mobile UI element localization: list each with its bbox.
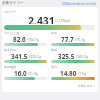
staticText: /305.2g xyxy=(76,54,88,58)
staticText: 炭水化物 xyxy=(4,48,16,52)
staticText: 詳細を見る › xyxy=(78,84,95,88)
button[interactable]: 詳細を見る › xyxy=(78,84,95,88)
staticText: たんぱく質 xyxy=(4,31,20,35)
staticText: /75.3g xyxy=(75,37,85,41)
staticText: 塩分 xyxy=(51,65,57,69)
staticText: 14.80 xyxy=(60,69,77,76)
staticText: 2024年4月8日(月)の記録 xyxy=(62,2,97,6)
staticText: 脂質 xyxy=(51,31,57,35)
staticText: 2,431 xyxy=(28,14,55,24)
staticText: 16.0 xyxy=(14,69,27,76)
button[interactable]: 2024年4月8日(月)の記録 xyxy=(62,2,97,6)
staticText: /21.9g xyxy=(28,71,38,75)
staticText: 栄養サマリー xyxy=(2,1,24,6)
staticText: /2,372kcal xyxy=(55,19,71,23)
staticText: 82.6 xyxy=(13,35,26,42)
staticText: 食物繊維 xyxy=(4,65,16,69)
staticText: 341.5 xyxy=(11,52,28,59)
staticText: /104.7g xyxy=(27,37,39,41)
staticText: 糖質 xyxy=(51,48,57,52)
staticText: 77.7 xyxy=(61,35,74,42)
staticText: カロリー xyxy=(4,10,17,14)
staticText: /329.2g xyxy=(29,54,41,58)
staticText: 325.5 xyxy=(58,52,75,59)
staticText: /7.5g xyxy=(78,71,86,75)
